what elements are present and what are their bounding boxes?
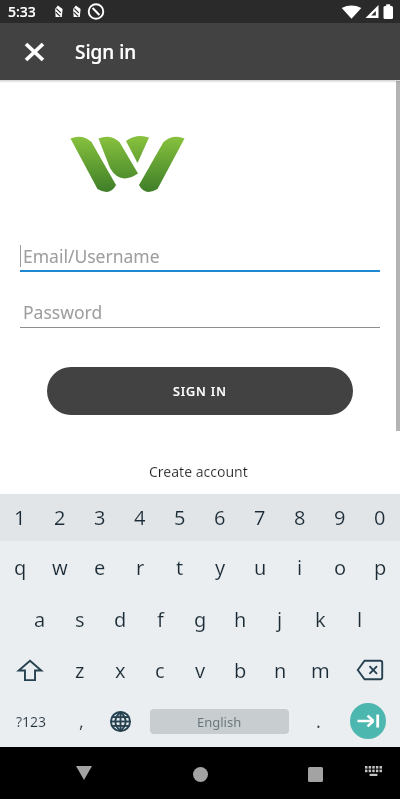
- staticText: .: [316, 709, 321, 734]
- button[interactable]: 1: [0, 494, 40, 541]
- staticText: f: [157, 606, 164, 633]
- button[interactable]: Back: [60, 749, 108, 797]
- button[interactable]: Backspace: [340, 644, 400, 696]
- button[interactable]: w: [40, 541, 80, 593]
- staticText: 8: [294, 504, 306, 531]
- button[interactable]: Create account: [143, 458, 254, 485]
- staticText: k: [315, 606, 326, 633]
- button[interactable]: Email/Username: [20, 240, 380, 272]
- button[interactable]: ?123: [0, 696, 62, 747]
- button[interactable]: r: [120, 541, 160, 593]
- button[interactable]: x: [100, 644, 140, 696]
- button[interactable]: m: [300, 644, 340, 696]
- staticText: v: [195, 657, 206, 684]
- staticText: 9: [334, 504, 346, 531]
- staticText: h: [234, 606, 247, 633]
- staticText: i: [297, 554, 303, 581]
- button[interactable]: English: [150, 709, 289, 734]
- staticText: 1: [14, 504, 26, 531]
- staticText: w: [52, 554, 68, 581]
- staticText: Create account: [149, 462, 248, 481]
- button[interactable]: y: [200, 541, 240, 593]
- staticText: j: [277, 606, 283, 633]
- staticText: t: [176, 554, 184, 581]
- button[interactable]: s: [60, 593, 100, 645]
- button[interactable]: z: [60, 644, 100, 696]
- staticText: p: [374, 554, 387, 581]
- staticText: d: [114, 606, 127, 633]
- button[interactable]: 4: [120, 494, 160, 541]
- button[interactable]: 2: [40, 494, 80, 541]
- button[interactable]: i: [280, 541, 320, 593]
- staticText: ,: [79, 709, 84, 734]
- staticText: o: [334, 554, 347, 581]
- button[interactable]: Next: [350, 703, 386, 739]
- button[interactable]: 8: [280, 494, 320, 541]
- button[interactable]: e: [80, 541, 120, 593]
- button[interactable]: Recent apps: [291, 750, 339, 798]
- staticText: q: [14, 554, 27, 581]
- button[interactable]: ,: [62, 696, 101, 747]
- button[interactable]: Password: [20, 296, 380, 328]
- button[interactable]: 0: [360, 494, 400, 541]
- staticText: 5: [174, 504, 186, 531]
- staticText: 7: [254, 504, 266, 531]
- button[interactable]: v: [180, 644, 220, 696]
- button[interactable]: 3: [80, 494, 120, 541]
- staticText: b: [234, 657, 247, 684]
- button[interactable]: Shift: [0, 644, 60, 696]
- staticText: x: [115, 657, 126, 684]
- button[interactable]: q: [0, 541, 40, 593]
- staticText: SIGN IN: [173, 383, 227, 400]
- button[interactable]: 6: [200, 494, 240, 541]
- staticText: z: [75, 657, 85, 684]
- button[interactable]: 7: [240, 494, 280, 541]
- button[interactable]: 5: [160, 494, 200, 541]
- staticText: a: [34, 606, 46, 633]
- button[interactable]: o: [320, 541, 360, 593]
- staticText: English: [197, 713, 242, 731]
- button[interactable]: Change keyboard language: [101, 696, 140, 747]
- button[interactable]: d: [100, 593, 140, 645]
- button[interactable]: .: [299, 696, 338, 747]
- staticText: s: [75, 606, 85, 633]
- staticText: r: [136, 554, 145, 581]
- staticText: 2: [54, 504, 66, 531]
- button[interactable]: t: [160, 541, 200, 593]
- staticText: y: [215, 554, 226, 581]
- staticText: e: [94, 554, 106, 581]
- button[interactable]: b: [220, 644, 260, 696]
- button[interactable]: n: [260, 644, 300, 696]
- staticText: 0: [374, 504, 386, 531]
- staticText: 5:33: [8, 2, 36, 21]
- staticText: l: [357, 606, 363, 633]
- staticText: 4: [134, 504, 146, 531]
- button[interactable]: j: [260, 593, 300, 645]
- button[interactable]: Switch keyboard: [353, 751, 393, 791]
- button[interactable]: k: [300, 593, 340, 645]
- staticText: Email/Username: [23, 244, 160, 268]
- button[interactable]: Home: [176, 750, 224, 798]
- staticText: c: [155, 657, 165, 684]
- staticText: Sign in: [75, 39, 137, 65]
- staticText: 3: [94, 504, 106, 531]
- staticText: Password: [23, 300, 103, 324]
- button[interactable]: l: [340, 593, 380, 645]
- button[interactable]: 9: [320, 494, 360, 541]
- staticText: 6: [214, 504, 226, 531]
- button[interactable]: g: [180, 593, 220, 645]
- button[interactable]: Close: [14, 32, 54, 72]
- button[interactable]: p: [360, 541, 400, 593]
- staticText: ?123: [16, 712, 47, 731]
- button[interactable]: u: [240, 541, 280, 593]
- button[interactable]: SIGN IN: [47, 367, 353, 415]
- button[interactable]: c: [140, 644, 180, 696]
- staticText: g: [194, 606, 207, 633]
- button[interactable]: f: [140, 593, 180, 645]
- staticText: n: [274, 657, 287, 684]
- button[interactable]: h: [220, 593, 260, 645]
- staticText: m: [311, 657, 330, 684]
- staticText: u: [254, 554, 267, 581]
- button[interactable]: a: [20, 593, 60, 645]
